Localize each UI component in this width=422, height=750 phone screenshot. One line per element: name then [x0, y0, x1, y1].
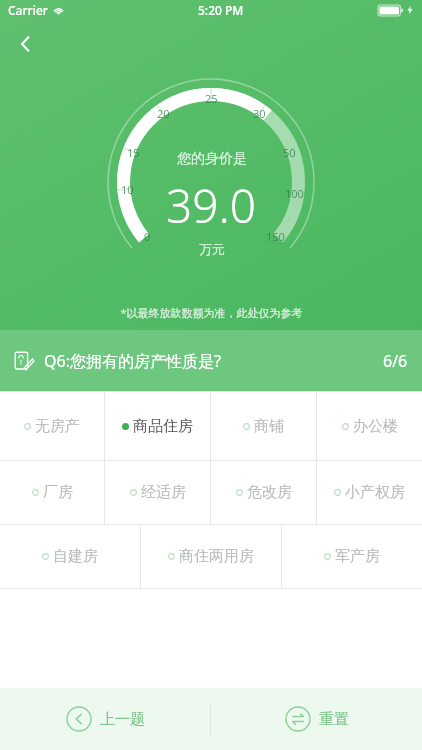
- staticText: 15: [127, 145, 140, 160]
- button[interactable]: 上一题: [0, 688, 210, 750]
- staticText: 商住两用房: [179, 547, 254, 566]
- button[interactable]: 商品住房: [105, 392, 210, 460]
- staticText: 30: [253, 106, 266, 121]
- staticText: 39.0: [166, 174, 257, 237]
- button[interactable]: 小产权房: [317, 461, 422, 524]
- staticText: Carrier: [8, 2, 48, 18]
- staticText: 150: [266, 229, 285, 244]
- button[interactable]: 危改房: [211, 461, 316, 524]
- staticText: 50: [283, 145, 296, 160]
- button[interactable]: 商铺: [211, 392, 316, 460]
- button[interactable]: 商住两用房: [141, 525, 281, 588]
- staticText: 商铺: [254, 417, 284, 436]
- button[interactable]: 经适房: [105, 461, 210, 524]
- staticText: 自建房: [53, 547, 98, 566]
- staticText: 100: [285, 186, 304, 201]
- button[interactable]: 重置: [211, 688, 422, 750]
- button[interactable]: 自建房: [0, 525, 140, 588]
- staticText: 万元: [199, 241, 225, 257]
- staticText: 6/6: [383, 350, 408, 372]
- staticText: 10: [121, 182, 134, 197]
- staticText: 20: [157, 106, 170, 121]
- staticText: 0: [144, 229, 151, 244]
- staticText: 办公楼: [353, 417, 398, 436]
- staticText: Q6:您拥有的房产性质是?: [44, 350, 221, 372]
- staticText: 无房产: [35, 417, 80, 436]
- button[interactable]: 厂房: [0, 461, 104, 524]
- button[interactable]: 无房产: [0, 392, 104, 460]
- staticText: 商品住房: [133, 417, 193, 436]
- staticText: 经适房: [141, 483, 186, 502]
- button[interactable]: Back: [6, 24, 46, 64]
- staticText: 小产权房: [345, 483, 405, 502]
- staticText: *以最终放款数额为准，此处仅为参考: [120, 305, 303, 320]
- staticText: 厂房: [43, 483, 73, 502]
- button[interactable]: 军产房: [282, 525, 422, 588]
- staticText: 危改房: [247, 483, 292, 502]
- button[interactable]: 办公楼: [317, 392, 422, 460]
- staticText: 5:20 PM: [198, 2, 244, 18]
- staticText: 25: [205, 91, 218, 106]
- staticText: 您的身价是: [177, 150, 247, 168]
- staticText: 军产房: [335, 547, 380, 566]
- staticText: 重置: [319, 710, 349, 729]
- staticText: 上一题: [100, 710, 145, 729]
